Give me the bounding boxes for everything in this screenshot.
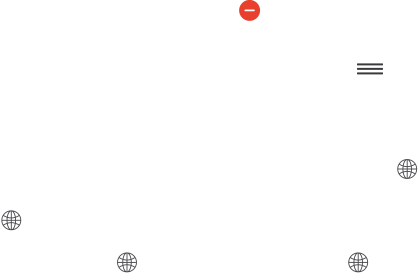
button[interactable]: Website bbox=[2, 211, 21, 230]
button[interactable]: Website bbox=[398, 159, 417, 178]
button[interactable]: Website bbox=[349, 253, 368, 272]
button[interactable]: Menu bbox=[357, 63, 383, 74]
button[interactable]: Website bbox=[117, 253, 136, 272]
button[interactable]: Remove bbox=[239, 0, 260, 21]
